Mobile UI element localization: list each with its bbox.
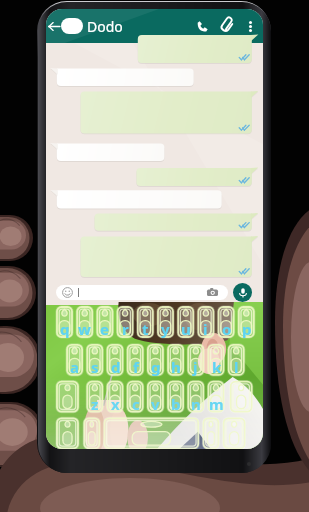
button[interactable]: r <box>117 306 134 338</box>
button[interactable]: key <box>103 417 199 449</box>
staticText: i <box>203 319 208 339</box>
button[interactable]: y <box>157 306 174 338</box>
button[interactable]: z <box>86 381 103 413</box>
staticText: d <box>111 357 121 377</box>
button[interactable]: Back <box>46 12 61 40</box>
button[interactable]: k <box>208 344 225 376</box>
button[interactable]: m <box>208 381 225 413</box>
staticText: Dodo <box>87 17 123 36</box>
staticText: f <box>133 357 139 377</box>
staticText: n <box>191 394 201 414</box>
staticText: y <box>161 319 170 339</box>
staticText: o <box>222 319 232 339</box>
button[interactable]: key <box>230 381 253 413</box>
button[interactable]: Attach <box>214 11 240 41</box>
staticText: a <box>70 357 79 377</box>
button[interactable]: More options <box>240 11 260 41</box>
button[interactable]: t <box>137 306 154 338</box>
staticText: l <box>234 357 239 377</box>
button[interactable]: w <box>76 306 93 338</box>
button[interactable]: e <box>96 306 113 338</box>
button[interactable]: key <box>83 417 100 449</box>
staticText: p <box>242 319 252 339</box>
button[interactable]: key <box>56 381 79 413</box>
button[interactable]: u <box>177 306 194 338</box>
button[interactable]: s <box>86 344 103 376</box>
button[interactable]: q <box>56 306 73 338</box>
staticText: x <box>111 394 120 414</box>
button[interactable]: d <box>107 344 124 376</box>
button[interactable]: n <box>187 381 204 413</box>
button[interactable]: p <box>238 306 255 338</box>
button[interactable]: Voice message <box>233 283 252 302</box>
staticText: w <box>78 319 91 339</box>
staticText: k <box>212 357 222 377</box>
button[interactable]: v <box>147 381 164 413</box>
button[interactable]: j <box>187 344 204 376</box>
button[interactable]: c <box>127 381 144 413</box>
staticText: g <box>151 357 161 377</box>
button[interactable]: b <box>167 381 184 413</box>
button[interactable]: key <box>223 417 246 449</box>
button[interactable]: f <box>127 344 144 376</box>
button[interactable]: key <box>202 417 219 449</box>
staticText: j <box>193 357 198 377</box>
button[interactable]: key <box>56 417 79 449</box>
button[interactable]: g <box>147 344 164 376</box>
button[interactable]: i <box>197 306 214 338</box>
button[interactable]: a <box>66 344 83 376</box>
staticText: z <box>91 394 99 414</box>
button[interactable]: Call <box>190 11 214 41</box>
staticText: q <box>60 319 70 339</box>
staticText: m <box>209 394 224 414</box>
staticText: b <box>171 394 181 414</box>
button[interactable] <box>56 285 228 300</box>
button[interactable]: l <box>228 344 245 376</box>
staticText: u <box>181 319 191 339</box>
staticText: v <box>151 394 160 414</box>
button[interactable]: h <box>167 344 184 376</box>
button[interactable]: x <box>107 381 124 413</box>
staticText: r <box>122 319 129 339</box>
staticText: h <box>171 357 181 377</box>
staticText: s <box>91 357 99 377</box>
staticText: t <box>142 319 149 339</box>
button[interactable]: o <box>218 306 235 338</box>
staticText: e <box>100 319 109 339</box>
staticText: c <box>132 394 140 414</box>
